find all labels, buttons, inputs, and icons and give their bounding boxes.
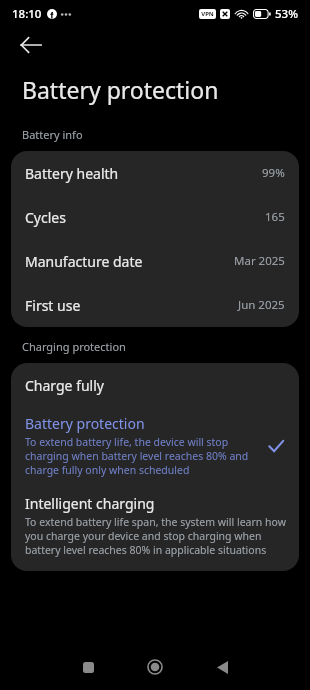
staticText: Battery protection bbox=[25, 414, 145, 433]
staticText: Charging protection bbox=[22, 339, 126, 354]
staticText: 99% bbox=[262, 165, 285, 181]
button[interactable]: First use bbox=[11, 283, 299, 327]
staticText: Intelligent charging bbox=[25, 494, 155, 513]
staticText: 18:10 bbox=[12, 6, 42, 22]
staticText: Charge fully bbox=[25, 376, 104, 395]
button[interactable]: Recent apps bbox=[66, 645, 110, 689]
staticText: Manufacture date bbox=[25, 252, 234, 271]
button[interactable]: Cycles bbox=[11, 195, 299, 239]
staticText: 165 bbox=[265, 209, 285, 225]
staticText: VPN bbox=[201, 10, 214, 18]
staticText: Mar 2025 bbox=[234, 253, 285, 269]
button[interactable]: Manufacture date bbox=[11, 239, 299, 283]
button[interactable]: Home bbox=[133, 645, 177, 689]
staticText: First use bbox=[25, 296, 238, 315]
staticText: Battery protection bbox=[22, 74, 219, 105]
button[interactable]: Back bbox=[200, 645, 244, 689]
staticText: To extend battery life, the device will … bbox=[25, 435, 257, 477]
button[interactable]: Battery health bbox=[11, 151, 299, 195]
button[interactable]: Charge fully bbox=[11, 363, 299, 407]
staticText: To extend battery life span, the system … bbox=[25, 515, 287, 557]
button[interactable]: Intelligent charging bbox=[11, 488, 299, 571]
button[interactable]: Battery protection bbox=[11, 407, 299, 488]
staticText: Cycles bbox=[25, 208, 265, 227]
staticText: Battery health bbox=[25, 164, 262, 183]
staticText: Jun 2025 bbox=[238, 297, 285, 313]
staticText: Battery info bbox=[22, 127, 83, 142]
button[interactable]: Back bbox=[12, 28, 50, 62]
staticText: 53% bbox=[275, 6, 298, 22]
